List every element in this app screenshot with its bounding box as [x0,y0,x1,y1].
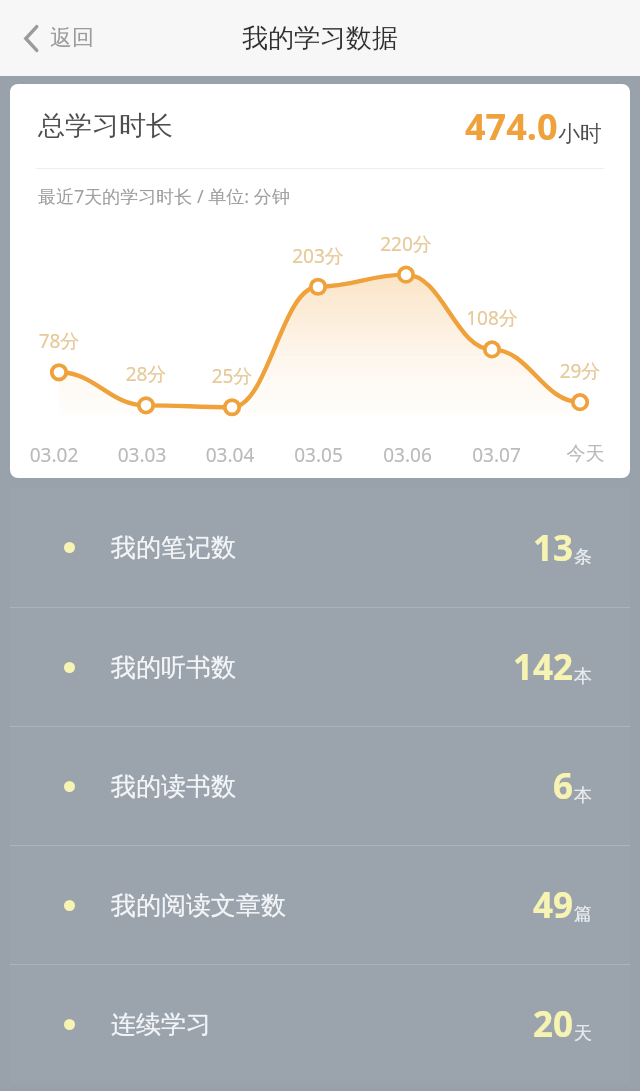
button[interactable]: 我的笔记数 [10,488,630,607]
staticText: 03.07 [452,442,541,468]
staticText: 28分 [112,361,180,387]
staticText: 03.04 [186,442,274,468]
button[interactable]: 我的听书数 [10,608,630,726]
staticText: 总学习时长 [38,109,173,143]
staticText: 篇 [574,903,592,926]
button[interactable]: Back [16,16,102,60]
staticText: 108分 [458,305,526,331]
staticText: 小时 [558,120,602,148]
staticText: 返回 [50,24,94,52]
staticText: 条 [574,546,592,569]
staticText: 我的阅读文章数 [111,890,286,921]
staticText: 03.02 [10,442,98,468]
staticText: 6 [553,762,574,810]
staticText: 今天 [541,442,630,466]
staticText: 474.0 [465,102,558,151]
staticText: 我的读书数 [111,771,236,802]
staticText: 最近7天的学习时长 / 单位: 分钟 [38,184,290,209]
staticText: 78分 [25,328,93,354]
staticText: 20 [533,1000,574,1048]
button[interactable]: 我的阅读文章数 [10,846,630,964]
staticText: 我的学习数据 [242,22,398,55]
staticText: 49 [533,881,574,929]
staticText: 203分 [284,243,352,269]
staticText: 03.03 [98,442,186,468]
staticText: 13 [533,524,574,572]
staticText: 连续学习 [111,1009,211,1040]
staticText: 29分 [546,358,614,384]
staticText: 220分 [372,231,440,257]
staticText: 03.05 [274,442,363,468]
staticText: 我的笔记数 [111,532,236,563]
staticText: 25分 [198,363,266,389]
staticText: 我的听书数 [111,652,236,683]
staticText: 天 [574,1022,592,1045]
staticText: 142 [513,643,574,691]
staticText: 本 [574,784,592,807]
staticText: 本 [574,665,592,688]
other: Back [24,25,39,52]
button[interactable]: 我的读书数 [10,727,630,845]
staticText: 03.06 [363,442,452,468]
button[interactable]: 连续学习 [10,965,630,1083]
